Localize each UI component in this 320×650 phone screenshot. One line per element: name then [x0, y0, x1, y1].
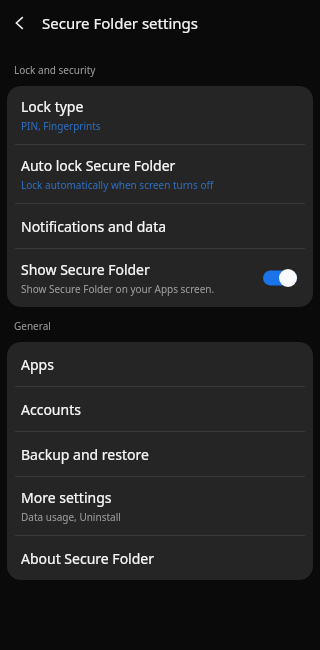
button[interactable]: Auto lock Secure Folder	[7, 145, 313, 203]
staticText: Data usage, Uninstall	[21, 510, 121, 524]
staticText: General	[14, 319, 51, 333]
staticText: Apps	[21, 355, 54, 374]
staticText: More settings	[21, 488, 112, 507]
staticText: About Secure Folder	[21, 549, 154, 568]
button[interactable]: Lock type	[7, 86, 313, 144]
staticText: Auto lock Secure Folder	[21, 156, 176, 175]
button[interactable]: Back	[0, 3, 40, 43]
staticText: Lock type	[21, 97, 84, 116]
staticText: PIN, Fingerprints	[21, 119, 101, 133]
button[interactable]: Backup and restore	[7, 432, 313, 476]
button[interactable]: Show Secure Folder	[7, 249, 313, 307]
staticText: Lock and security	[14, 63, 96, 77]
button[interactable]: More settings	[7, 477, 313, 535]
staticText: Show Secure Folder	[21, 260, 150, 279]
staticText: Backup and restore	[21, 445, 149, 464]
staticText: Lock automatically when screen turns off	[21, 178, 214, 192]
button[interactable]: Apps	[7, 342, 313, 386]
button[interactable]: Notifications and data	[7, 204, 313, 248]
staticText: Secure Folder settings	[42, 13, 198, 33]
button[interactable]: About Secure Folder	[7, 536, 313, 580]
button[interactable]: Accounts	[7, 387, 313, 431]
button[interactable]: Show Secure Folder toggle	[259, 264, 301, 292]
staticText: Accounts	[21, 400, 81, 419]
staticText: Show Secure Folder on your Apps screen.	[21, 282, 215, 296]
staticText: Notifications and data	[21, 217, 167, 236]
